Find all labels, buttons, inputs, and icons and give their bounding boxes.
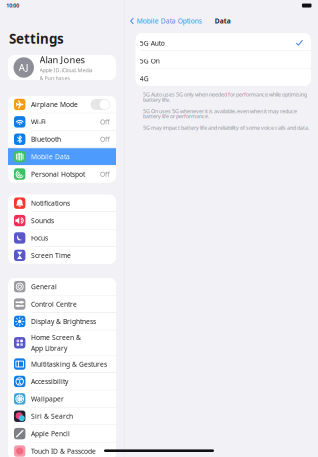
staticText: Screen Time [31,251,71,260]
staticText: Personal Hotspot [31,170,85,178]
staticText: Home Screen & [31,333,81,342]
staticText: Accessibility [31,377,68,386]
staticText: App Library [31,344,67,352]
staticText: 5G Auto [140,39,165,48]
staticText: Alan Jones [40,53,85,66]
staticText: Siri & Search [31,412,73,421]
staticText: Apple Pencil [31,429,70,438]
staticText: Bluetooth [31,135,61,144]
staticText: Multitasking & Gestures [31,360,107,368]
button[interactable]: 4G [136,69,311,86]
button[interactable]: Accessibility [8,373,116,390]
button[interactable]: Apple Pencil [8,425,116,442]
button[interactable]: Sounds [8,212,116,229]
staticText: Display & Brightness [31,317,96,326]
staticText: Apple ID, iCloud, Media [40,67,93,74]
staticText: 4G [140,74,149,83]
staticText: Mobile Data [31,152,70,161]
staticText: Focus [31,233,48,242]
staticText: & Purchases [40,75,71,82]
button[interactable]: Wallpaper [8,390,116,407]
button[interactable]: Mobile Data Options [130,17,202,25]
button[interactable]: Wi-Fi [8,113,116,130]
staticText: 5G may impact battery life and reliabili… [143,124,309,131]
staticText: Wallpaper [31,394,64,403]
button[interactable]: AJ [8,55,116,80]
staticText: Mobile Data Options [137,17,202,25]
staticText: Control Centre [31,300,77,308]
button[interactable]: Personal Hotspot [8,166,116,182]
staticText: Off [100,117,110,126]
button[interactable]: Control Centre [8,296,116,312]
button[interactable]: 5G On [136,51,311,68]
button[interactable]: Screen Time [8,247,116,264]
staticText: Off [100,135,110,144]
button[interactable]: Display & Brightness [8,313,116,330]
staticText: 5G On uses 5G whenever it is available, … [143,108,297,115]
button[interactable]: Home Screen & [8,330,116,355]
button[interactable]: Bluetooth [8,131,116,148]
staticText: battery life or performance. [143,113,209,120]
staticText: 5G Auto uses 5G only when needed for per… [143,91,307,98]
button[interactable]: 5G Auto [136,33,311,50]
staticText: 5G On [140,56,160,65]
button[interactable]: Airplane Mode [8,96,116,113]
button[interactable]: General [8,278,116,295]
staticText: 10:00 [6,2,19,9]
button[interactable]: Touch ID & Passcode [8,443,116,457]
staticText: battery life. [143,96,170,103]
staticText: Wi-Fi [31,117,46,126]
staticText: Notifications [31,199,70,208]
button[interactable]: Siri & Search [8,408,116,425]
button[interactable]: Focus [8,229,116,246]
button[interactable]: Multitasking & Gestures [8,356,116,372]
staticText: Airplane Mode [31,100,78,109]
staticText: AJ [19,61,29,74]
staticText: General [31,282,57,291]
staticText: Touch ID & Passcode [31,447,96,455]
staticText: Sounds [31,216,54,225]
staticText: Data [215,17,231,25]
button[interactable]: Notifications [8,195,116,212]
button[interactable]: Mobile Data [8,148,116,165]
staticText: Settings [9,30,64,47]
staticText: Off [100,170,110,178]
